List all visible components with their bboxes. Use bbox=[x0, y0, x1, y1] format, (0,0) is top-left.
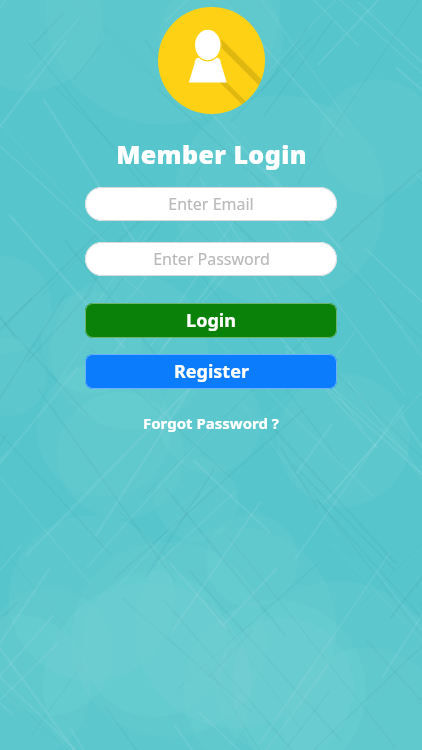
button[interactable]: Forgot Password ? bbox=[133, 410, 289, 436]
staticText: Enter Password bbox=[153, 248, 270, 270]
button[interactable]: Login bbox=[85, 303, 337, 338]
staticText: Login bbox=[186, 308, 236, 333]
staticText: Member Login bbox=[116, 137, 307, 171]
button[interactable]: Enter Password bbox=[85, 242, 337, 276]
button[interactable]: Enter Email bbox=[85, 187, 337, 221]
other: Member avatar bbox=[158, 7, 265, 114]
button[interactable]: Register bbox=[85, 354, 337, 389]
staticText: Register bbox=[174, 359, 249, 384]
staticText: Forgot Password ? bbox=[143, 413, 279, 433]
staticText: Enter Email bbox=[168, 193, 254, 215]
